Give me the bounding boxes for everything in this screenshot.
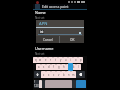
button[interactable]: [39, 80, 42, 88]
staticText: APN: [39, 21, 48, 27]
button[interactable]: p: [78, 57, 83, 63]
staticText: d: [48, 65, 50, 69]
button[interactable]: q: [33, 57, 38, 63]
staticText: b: [63, 73, 65, 77]
staticText: Name: [35, 10, 46, 15]
staticText: a: [38, 65, 40, 69]
button[interactable]: n: [66, 71, 71, 78]
button[interactable]: Shift: [34, 71, 41, 78]
staticText: Not set: [35, 16, 45, 20]
staticText: int: [40, 30, 44, 34]
button[interactable]: u: [63, 57, 68, 63]
button[interactable]: j: [66, 64, 71, 70]
staticText: Cancel: [43, 38, 53, 42]
button[interactable]: k: [71, 64, 76, 70]
staticText: i: [70, 58, 71, 62]
staticText: u: [65, 58, 67, 62]
staticText: w: [39, 58, 42, 62]
button[interactable]: Cancel: [36, 36, 59, 43]
button[interactable]: l: [76, 64, 81, 70]
staticText: z: [43, 73, 45, 77]
button[interactable]: v: [56, 71, 61, 78]
staticText: n: [68, 73, 70, 77]
button[interactable]: Name: [35, 10, 85, 20]
button[interactable]: w: [38, 57, 43, 63]
button[interactable]: r: [48, 57, 53, 63]
staticText: Not set: [35, 52, 45, 56]
staticText: o: [75, 58, 77, 62]
button[interactable]: a: [36, 64, 41, 70]
button[interactable]: z: [41, 71, 46, 78]
staticText: g: [58, 65, 60, 69]
button[interactable]: c: [51, 71, 56, 78]
button[interactable]: i: [68, 57, 73, 63]
staticText: f: [53, 65, 54, 69]
button[interactable]: [76, 80, 86, 88]
staticText: e: [45, 58, 47, 62]
button[interactable]: f: [51, 64, 56, 70]
staticText: s: [43, 65, 45, 69]
button[interactable]: s: [41, 64, 46, 70]
staticText: p: [80, 58, 82, 62]
staticText: k: [73, 65, 75, 69]
staticText: Edit access point: [42, 4, 69, 9]
staticText: t: [55, 58, 56, 62]
button[interactable]: OK: [60, 36, 84, 43]
button[interactable]: d: [46, 64, 51, 70]
button[interactable]: int: [38, 29, 82, 35]
staticText: m: [72, 73, 75, 77]
staticText: c: [53, 73, 55, 77]
button[interactable]: h: [61, 64, 66, 70]
button[interactable]: Backspace: [76, 71, 85, 78]
button[interactable]: m: [71, 71, 76, 78]
staticText: q: [35, 58, 37, 62]
staticText: r: [50, 58, 52, 62]
staticText: y: [60, 58, 62, 62]
button[interactable]: g: [56, 64, 61, 70]
staticText: ?123: [34, 80, 39, 88]
button[interactable]: y: [58, 57, 63, 63]
staticText: x: [48, 73, 50, 77]
staticText: OK: [70, 38, 75, 42]
button[interactable]: o: [73, 57, 78, 63]
button[interactable]: ?123: [34, 80, 39, 88]
staticText: v: [58, 73, 60, 77]
staticText: l: [78, 65, 79, 69]
button[interactable]: x: [46, 71, 51, 78]
button[interactable]: b: [61, 71, 66, 78]
staticText: h: [63, 65, 65, 69]
button[interactable]: Username: [35, 46, 85, 56]
button[interactable]: t: [53, 57, 58, 63]
staticText: Username: [35, 46, 54, 51]
button[interactable]: e: [43, 57, 48, 63]
